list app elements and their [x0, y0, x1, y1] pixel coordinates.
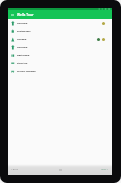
- staticText: Camping: [17, 38, 40, 45]
- button[interactable]: Grocery Shopping: [8, 67, 112, 75]
- staticText: Photography: [17, 30, 50, 37]
- button[interactable]: Home: [57, 167, 63, 173]
- button[interactable]: Travelling: [8, 19, 112, 27]
- button[interactable]: NEXT >: [101, 168, 108, 171]
- staticText: Travelling: [17, 22, 42, 29]
- button[interactable]: Study trip: [8, 59, 112, 67]
- staticText: Wells Tour: [17, 12, 50, 21]
- staticText: NEXT >: [101, 168, 118, 175]
- button[interactable]: Travelling: [8, 43, 112, 51]
- button[interactable]: < BACK: [11, 168, 18, 171]
- staticText: Study trip: [17, 62, 42, 69]
- staticText: < BACK: [11, 168, 28, 175]
- button[interactable]: Sightseeing: [8, 51, 112, 59]
- staticText: Sightseeing: [17, 54, 47, 61]
- button[interactable]: Camping: [8, 35, 112, 43]
- button[interactable]: Photography: [8, 27, 112, 35]
- button[interactable]: Open navigation menu: [9, 11, 16, 18]
- staticText: Travelling: [17, 46, 42, 53]
- staticText: Grocery Shopping: [17, 70, 62, 77]
